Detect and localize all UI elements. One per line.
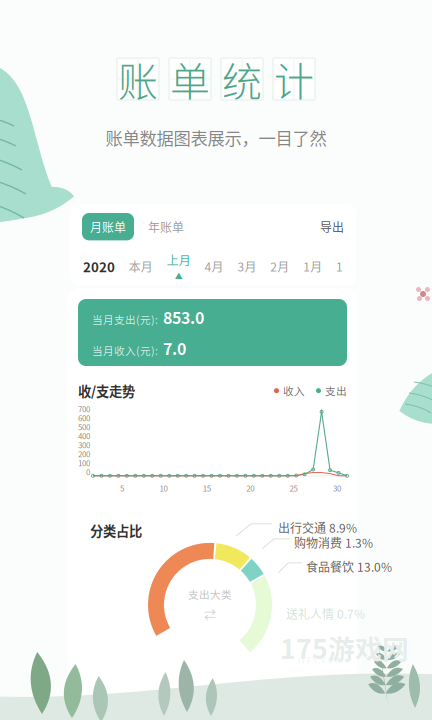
staticText: 1: [336, 258, 343, 275]
button[interactable]: 3月: [237, 258, 256, 275]
button[interactable]: 月账单: [82, 213, 134, 240]
staticText: 20: [246, 482, 254, 494]
button[interactable]: 1月: [303, 258, 322, 275]
staticText: 0: [86, 466, 90, 478]
staticText: 853.0: [163, 305, 204, 328]
staticText: l l 7 5 . c o m: [298, 654, 342, 666]
staticText: 支出大类: [188, 586, 232, 602]
button[interactable]: 年账单: [134, 213, 198, 240]
staticText: 200: [78, 448, 90, 460]
staticText: 出行交通 8.9%: [278, 519, 357, 536]
staticText: 3月: [237, 258, 256, 275]
staticText: 收入: [283, 383, 305, 398]
staticText: 4月: [205, 258, 224, 275]
staticText: 500: [78, 421, 90, 433]
button[interactable]: 上月: [167, 251, 191, 281]
staticText: 计: [274, 50, 314, 108]
staticText: 送礼人情 0.7%: [286, 605, 365, 622]
staticText: ⇄: [204, 606, 216, 623]
staticText: 600: [78, 412, 90, 424]
staticText: 上月: [167, 251, 191, 269]
staticText: 175游戏网: [280, 628, 409, 667]
staticText: 100: [78, 457, 90, 469]
staticText: 700: [78, 403, 90, 415]
button[interactable]: 导出: [320, 213, 344, 240]
staticText: 当月支出(元):: [92, 311, 158, 327]
staticText: 15: [203, 482, 211, 494]
staticText: 支出: [325, 383, 347, 398]
staticText: 本月: [129, 258, 153, 275]
staticText: 分类占比: [90, 521, 142, 540]
button[interactable]: 2月: [270, 258, 289, 275]
button[interactable]: 4月: [205, 258, 224, 275]
staticText: 30: [333, 482, 341, 494]
staticText: 食品餐饮 13.0%: [306, 558, 392, 575]
staticText: 7.0: [163, 336, 186, 360]
staticText: 统: [222, 50, 262, 108]
staticText: 5: [120, 482, 124, 494]
staticText: 2020: [83, 257, 115, 276]
staticText: 导出: [320, 218, 344, 235]
staticText: 年账单: [148, 218, 184, 235]
staticText: 账: [118, 50, 158, 108]
staticText: 1月: [303, 258, 322, 275]
staticText: 当月收入(元):: [92, 343, 158, 358]
staticText: 账单数据图表展示，一目了然: [105, 125, 326, 150]
staticText: 10: [159, 482, 167, 494]
staticText: 收/支走势: [78, 381, 135, 400]
staticText: 2月: [270, 258, 289, 275]
button[interactable]: 本月: [129, 258, 153, 275]
staticText: 购物消费 1.3%: [294, 534, 373, 551]
staticText: 300: [78, 439, 90, 451]
staticText: ▲: [175, 270, 183, 281]
staticText: 25: [290, 482, 298, 494]
staticText: 400: [78, 430, 90, 442]
staticText: 单: [170, 50, 210, 108]
staticText: 月账单: [90, 218, 126, 235]
